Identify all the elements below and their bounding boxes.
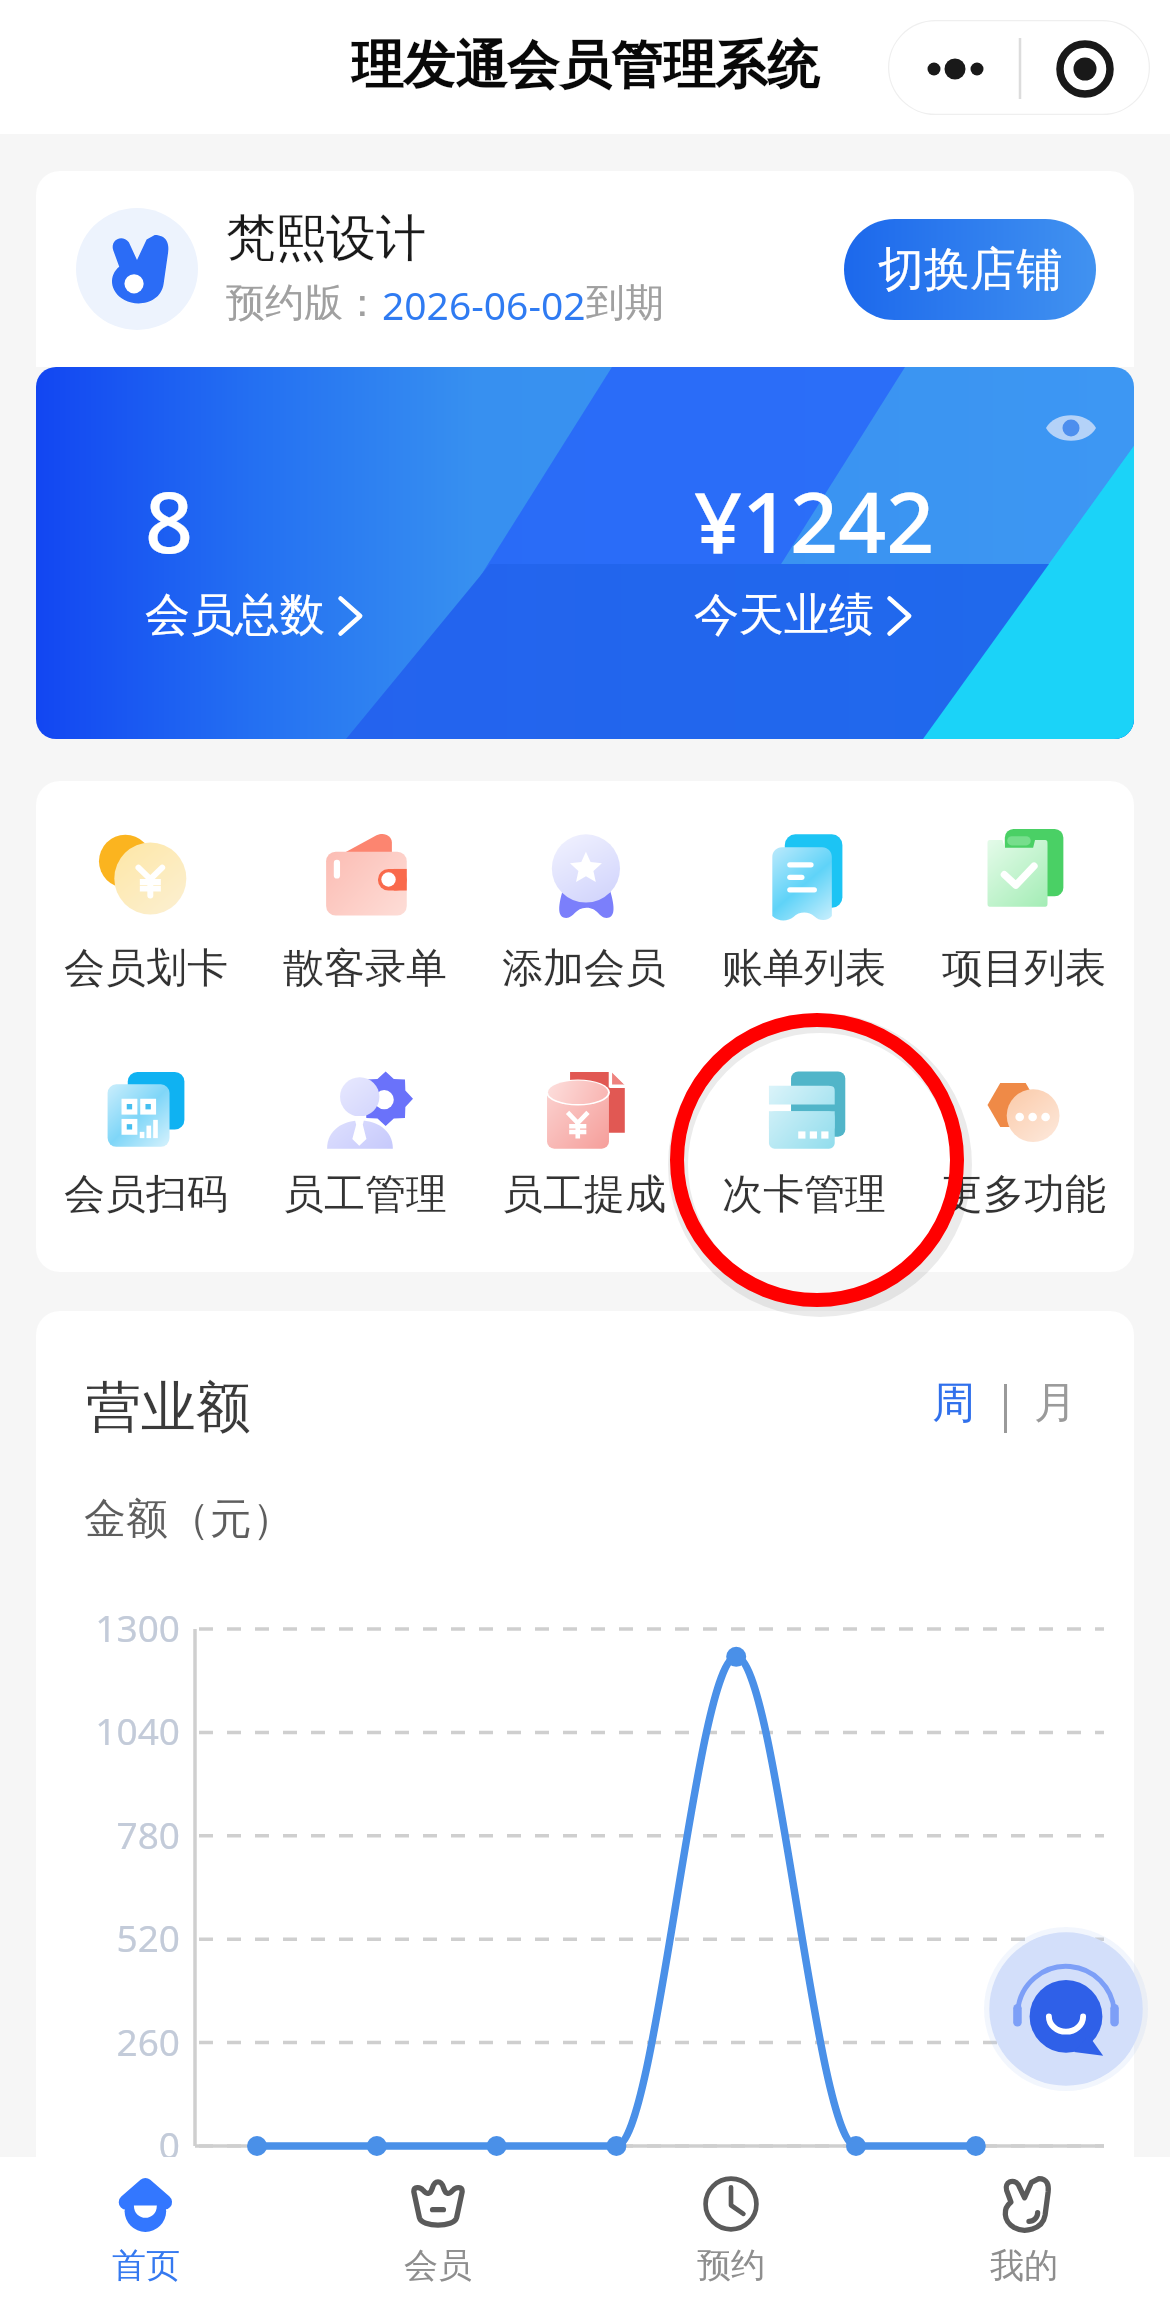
staticText: 周 — [932, 1376, 975, 1430]
button[interactable]: 更多功能 — [914, 1057, 1134, 1221]
button[interactable]: 预约 — [584, 2157, 877, 2321]
button[interactable]: 首页 — [0, 2157, 292, 2321]
button[interactable]: 账单列表 — [694, 831, 914, 995]
staticText: 更多功能 — [942, 1169, 1106, 1221]
button[interactable]: 会员 — [292, 2157, 584, 2321]
staticText: 0 — [44, 2119, 180, 2158]
staticText: 我的 — [990, 2244, 1058, 2287]
staticText: 理发通会员管理系统 — [351, 33, 819, 99]
button[interactable]: 周 — [922, 1372, 984, 1434]
staticText: 8 — [145, 463, 194, 577]
staticText: 首页 — [112, 2244, 180, 2287]
staticText: 预约版： — [226, 278, 382, 327]
staticText: 今天业绩 — [694, 587, 874, 644]
staticText: 到期 — [586, 278, 664, 327]
staticText: 2026-06-02 — [382, 278, 586, 331]
button[interactable]: 员工管理 — [255, 1057, 474, 1221]
button[interactable]: Toggle visibility — [1041, 398, 1101, 458]
button[interactable]: Customer service — [984, 1927, 1148, 2091]
staticText: 添加会员 — [502, 943, 666, 995]
button[interactable]: 我的 — [877, 2157, 1170, 2321]
staticText: 780 — [44, 1809, 180, 1859]
button[interactable]: 会员划卡 — [36, 831, 255, 995]
staticText: 次卡管理 — [722, 1169, 886, 1221]
button[interactable]: More and Close — [888, 20, 1150, 115]
staticText: 会员 — [404, 2244, 472, 2287]
staticText: 会员总数 — [145, 587, 325, 644]
staticText: 员工管理 — [283, 1169, 447, 1221]
staticText: 散客录单 — [283, 943, 447, 995]
button[interactable]: 员工提成 — [474, 1057, 694, 1221]
staticText: 员工提成 — [502, 1169, 666, 1221]
button[interactable]: ¥1242 — [585, 367, 1134, 739]
staticText: 营业额 — [86, 1373, 251, 1442]
button[interactable]: 散客录单 — [255, 831, 474, 995]
button[interactable]: 次卡管理 — [694, 1057, 914, 1221]
staticText: ¥1242 — [694, 463, 935, 577]
staticText: 账单列表 — [722, 943, 886, 995]
staticText: 520 — [44, 1912, 180, 1962]
staticText: 项目列表 — [942, 943, 1106, 995]
button[interactable]: 8 — [36, 367, 585, 739]
staticText: 会员扫码 — [64, 1169, 228, 1221]
button[interactable]: 项目列表 — [914, 831, 1134, 995]
staticText: 会员划卡 — [64, 943, 228, 995]
staticText: 切换店铺 — [878, 241, 1062, 299]
button[interactable]: 月 — [1024, 1372, 1086, 1434]
staticText: 金额（元） — [84, 1493, 294, 1546]
staticText: 1300 — [44, 1602, 180, 1652]
button[interactable]: 切换店铺 — [844, 219, 1096, 320]
staticText: 预约 — [697, 2244, 765, 2287]
staticText: 梵熙设计 — [226, 207, 426, 270]
button[interactable]: 会员扫码 — [36, 1057, 255, 1221]
staticText: 260 — [44, 2016, 180, 2066]
staticText: 月 — [1034, 1376, 1077, 1430]
staticText: 1040 — [44, 1705, 180, 1755]
button[interactable]: 添加会员 — [474, 831, 694, 995]
